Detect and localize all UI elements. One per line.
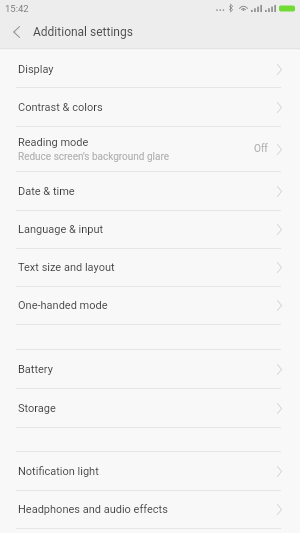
staticText: Off	[254, 143, 268, 155]
staticText: One-handed mode	[18, 299, 108, 312]
button[interactable]: One-handed mode	[0, 287, 300, 324]
button[interactable]: Notification light	[0, 452, 300, 490]
button[interactable]: Back	[0, 16, 33, 48]
button[interactable]: Battery	[0, 350, 300, 388]
staticText: 15:42	[5, 3, 29, 14]
staticText: Display	[18, 63, 54, 76]
button[interactable]: Language & input	[0, 211, 300, 248]
staticText: Battery	[18, 363, 53, 376]
button[interactable]: Date & time	[0, 172, 300, 210]
staticText: Text size and layout	[18, 261, 115, 274]
button[interactable]: Reading mode	[0, 127, 300, 171]
staticText: Storage	[18, 402, 56, 415]
staticText: Reduce screen's background glare	[18, 151, 170, 163]
button[interactable]: Display	[0, 51, 300, 87]
button[interactable]: Storage	[0, 389, 300, 427]
staticText: Language & input	[18, 223, 104, 236]
staticText: Notification light	[18, 465, 99, 478]
staticText: Date & time	[18, 185, 75, 198]
staticText: Additional settings	[33, 25, 133, 39]
staticText: Headphones and audio effects	[18, 503, 168, 516]
staticText: Reading mode	[18, 136, 89, 149]
button[interactable]: Headphones and audio effects	[0, 491, 300, 528]
staticText: Contrast & colors	[18, 101, 103, 114]
button[interactable]: Contrast & colors	[0, 88, 300, 126]
button[interactable]: Text size and layout	[0, 249, 300, 286]
